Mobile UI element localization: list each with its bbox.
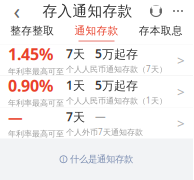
staticText: 7天	[66, 46, 85, 62]
staticText: >	[177, 114, 185, 132]
staticText: ‹	[13, 0, 20, 25]
button[interactable]: Customer service	[145, 0, 167, 22]
button[interactable]: 整存整取	[0, 22, 64, 44]
staticText: 个人外币7天通知存款	[66, 127, 143, 137]
staticText: 5万起存	[95, 77, 138, 93]
button[interactable]: —	[0, 107, 193, 138]
staticText: 年利率最高可至	[8, 67, 64, 76]
staticText: —	[95, 110, 106, 124]
staticText: —	[8, 107, 23, 127]
staticText: >	[177, 51, 185, 69]
staticText: i	[62, 155, 64, 164]
staticText: 0.90%	[8, 75, 53, 96]
staticText: 存本取息	[139, 24, 183, 37]
staticText: 1.45%	[8, 43, 53, 65]
button[interactable]: i	[54, 149, 139, 169]
button[interactable]: 0.90%	[0, 76, 193, 107]
staticText: 什么是通知存款	[70, 153, 133, 165]
staticText: 个人人民币通知存款（1天）	[66, 95, 167, 106]
staticText: 通知存款	[74, 24, 118, 37]
staticText: 整存整取	[10, 24, 54, 37]
staticText: 个人人民币通知存款（7天）	[66, 64, 167, 74]
staticText: 7天	[66, 109, 85, 125]
button[interactable]: 通知存款	[64, 22, 129, 44]
staticText: >	[177, 83, 185, 100]
staticText: 年利率最高可至	[8, 98, 64, 108]
staticText: 年利率最高可至	[8, 129, 64, 139]
staticText: 存入通知存款	[42, 2, 132, 20]
button[interactable]: More	[167, 0, 189, 22]
button[interactable]: Back	[4, 0, 30, 22]
button[interactable]: 存本取息	[129, 22, 193, 44]
staticText: 1天	[66, 77, 85, 93]
button[interactable]: 1.45%	[0, 44, 193, 75]
staticText: 5万起存	[95, 46, 138, 62]
